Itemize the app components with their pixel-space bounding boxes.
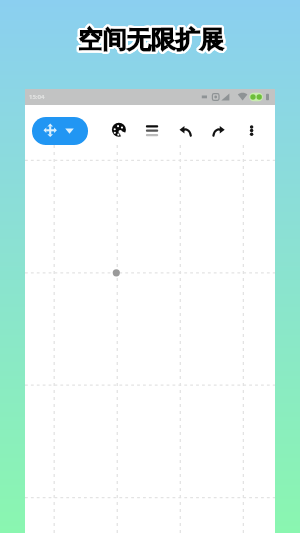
staticText: 空间无限扩展 xyxy=(77,26,223,57)
button[interactable]: Layers xyxy=(136,119,157,140)
staticText: 空间无限扩展 xyxy=(77,27,223,58)
staticText: 空间无限扩展 xyxy=(79,23,225,54)
staticText: 15:04 xyxy=(29,93,45,101)
staticText: 空间无限扩展 xyxy=(79,24,225,55)
staticText: 空间无限扩展 xyxy=(78,25,224,56)
button[interactable]: Move tool xyxy=(32,117,88,145)
staticText: 空间无限扩展 xyxy=(79,27,225,58)
staticText: 空间无限扩展 xyxy=(76,25,222,56)
button[interactable]: Undo xyxy=(176,119,197,140)
staticText: 空间无限扩展 xyxy=(80,25,226,56)
staticText: 空间无限扩展 xyxy=(76,26,222,57)
staticText: 空间无限扩展 xyxy=(79,26,225,57)
staticText: 空间无限扩展 xyxy=(80,24,226,55)
button[interactable]: Redo xyxy=(208,119,229,140)
staticText: 空间无限扩展 xyxy=(78,23,224,54)
staticText: 空间无限扩展 xyxy=(78,27,224,58)
button[interactable]: More options xyxy=(242,119,263,140)
staticText: 空间无限扩展 xyxy=(77,24,223,55)
staticText: 空间无限扩展 xyxy=(77,23,223,54)
staticText: 空间无限扩展 xyxy=(76,24,222,55)
button[interactable]: Color palette xyxy=(109,119,130,140)
staticText: 空间无限扩展 xyxy=(80,26,226,57)
